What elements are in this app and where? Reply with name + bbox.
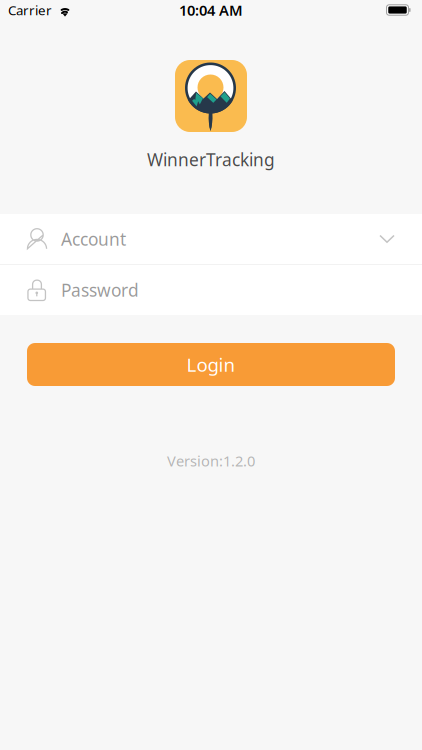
button[interactable]: Choose a saved account bbox=[376, 228, 398, 250]
staticText: Account bbox=[61, 227, 126, 250]
button[interactable]: Password bbox=[0, 265, 422, 315]
staticText: Version:1.2.0 bbox=[167, 451, 255, 470]
staticText: 10:04 AM bbox=[179, 0, 243, 20]
staticText: Carrier bbox=[8, 1, 52, 19]
staticText: Password bbox=[61, 278, 139, 301]
staticText: Login bbox=[186, 352, 235, 377]
staticText: WinnerTracking bbox=[147, 148, 275, 171]
button[interactable]: Login bbox=[27, 343, 395, 386]
button[interactable]: Account bbox=[0, 214, 422, 264]
